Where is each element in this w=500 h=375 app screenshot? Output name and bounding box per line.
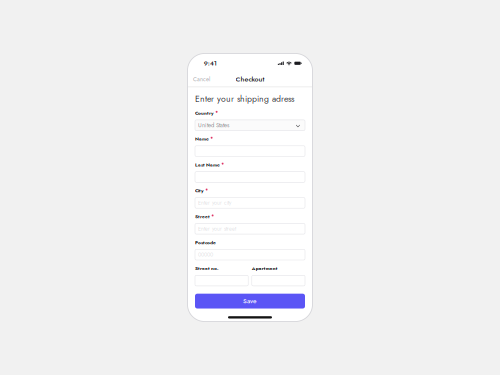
button[interactable]: Enter your city [195, 198, 305, 208]
staticText: Postcode [195, 239, 216, 246]
staticText: Enter your city [198, 199, 231, 207]
staticText: City [195, 187, 204, 194]
button[interactable]: Enter your street [195, 223, 305, 234]
staticText: Country [195, 109, 214, 116]
staticText: United States [198, 121, 229, 129]
staticText: 00000 [198, 251, 213, 259]
staticText: Save [243, 296, 257, 306]
staticText: Street [195, 213, 210, 220]
button[interactable]: 00000 [195, 249, 305, 260]
button[interactable]: Cancel [187, 73, 215, 86]
button[interactable]: United States [195, 120, 305, 130]
staticText: Name [195, 135, 209, 142]
staticText: 9:41 [204, 58, 217, 68]
button[interactable] [252, 275, 305, 286]
staticText: Cancel [193, 75, 210, 83]
staticText: Checkout [235, 74, 264, 84]
staticText: Street no. [195, 265, 219, 272]
staticText: Enter your street [198, 225, 236, 233]
button[interactable] [195, 275, 248, 286]
staticText: Apartment [252, 265, 278, 272]
button[interactable]: Save [195, 294, 305, 308]
staticText: Enter your shipping adress [195, 92, 294, 105]
staticText: Last Name [195, 161, 220, 168]
